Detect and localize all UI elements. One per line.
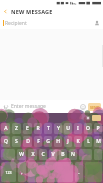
button[interactable]: Theme <box>92 115 101 121</box>
staticText: D <box>26 138 30 145</box>
staticText: Recipient <box>5 20 27 27</box>
staticText: 123 <box>5 170 12 175</box>
staticText: V <box>51 151 55 158</box>
button[interactable]: U <box>64 123 72 134</box>
staticText: S <box>15 138 18 145</box>
button[interactable]: SEND <box>88 103 101 111</box>
button[interactable]: Keyboard settings <box>83 113 92 122</box>
staticText: W <box>19 151 24 158</box>
button[interactable]: K <box>74 136 82 147</box>
button[interactable]: S <box>12 136 21 147</box>
button[interactable]: Attach <box>0 101 11 112</box>
staticText: L <box>87 138 90 145</box>
button[interactable] <box>85 162 102 182</box>
button[interactable]: F <box>34 136 42 147</box>
staticText: P <box>96 125 100 132</box>
button[interactable]: O <box>84 123 92 134</box>
button[interactable]: Z <box>12 123 21 134</box>
button[interactable] <box>79 149 92 160</box>
staticText: SEND <box>90 105 100 110</box>
staticText: . <box>78 169 80 176</box>
button[interactable]: Recipient <box>5 17 91 29</box>
button[interactable] <box>28 162 73 182</box>
button[interactable]: Y <box>54 123 62 134</box>
staticText: C <box>41 151 45 158</box>
button[interactable]: R <box>34 123 42 134</box>
button[interactable]: A <box>1 123 10 134</box>
button[interactable]: C <box>39 149 47 160</box>
button[interactable] <box>1 149 15 160</box>
button[interactable]: Back <box>0 6 11 17</box>
staticText: , <box>21 169 23 176</box>
staticText: Enter message <box>11 103 46 110</box>
button[interactable]: M <box>94 136 102 147</box>
button[interactable]: Choose contact <box>91 17 103 29</box>
staticText: Q <box>4 138 8 145</box>
button[interactable]: N <box>69 149 77 160</box>
button[interactable]: B <box>59 149 67 160</box>
button[interactable]: H <box>54 136 62 147</box>
button[interactable]: T <box>44 123 52 134</box>
button[interactable]: E <box>23 123 32 134</box>
button[interactable] <box>94 149 102 160</box>
button[interactable]: Emoji <box>77 101 88 112</box>
button[interactable]: P <box>94 123 102 134</box>
button[interactable]: D <box>23 136 32 147</box>
staticText: E <box>26 125 29 132</box>
staticText: T <box>47 125 50 132</box>
staticText: F <box>37 138 40 145</box>
button[interactable]: . <box>75 162 83 182</box>
button[interactable]: Q <box>1 136 10 147</box>
button[interactable]: W <box>17 149 26 160</box>
button[interactable]: I <box>74 123 82 134</box>
button[interactable]: X <box>28 149 37 160</box>
button[interactable]: 123 <box>1 162 16 182</box>
staticText: X <box>31 151 35 158</box>
staticText: K <box>76 138 80 145</box>
staticText: NEW MESSAGE <box>11 8 53 15</box>
button[interactable]: V <box>49 149 57 160</box>
staticText: R <box>36 125 40 132</box>
button[interactable]: , <box>18 162 26 182</box>
staticText: O <box>86 125 90 132</box>
button[interactable]: Enter message <box>11 100 77 113</box>
staticText: G <box>46 138 50 145</box>
staticText: Y <box>57 125 60 132</box>
staticText: A <box>4 125 8 132</box>
button[interactable]: L <box>84 136 92 147</box>
button[interactable]: G <box>44 136 52 147</box>
staticText: N <box>71 151 75 158</box>
staticText: J <box>67 138 69 145</box>
staticText: U <box>66 125 70 132</box>
staticText: M <box>96 138 101 145</box>
staticText: H <box>56 138 60 145</box>
staticText: B <box>61 151 65 158</box>
staticText: I <box>77 125 79 132</box>
button[interactable]: J <box>64 136 72 147</box>
staticText: Z <box>15 125 18 132</box>
